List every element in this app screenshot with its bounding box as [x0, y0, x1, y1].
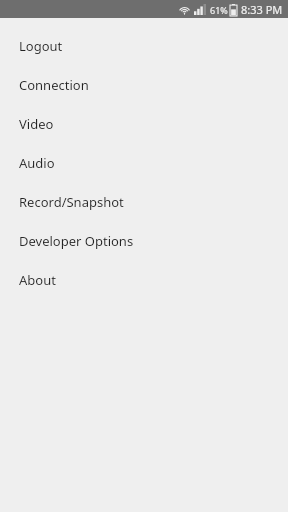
button[interactable]: Developer Options: [0, 221, 288, 260]
staticText: 61%: [210, 4, 228, 16]
button[interactable]: Video: [0, 104, 288, 143]
button[interactable]: Record/Snapshot: [0, 182, 288, 221]
button[interactable]: Logout: [0, 26, 288, 65]
staticText: Developer Options: [19, 232, 134, 250]
other: Battery 61 percent: [230, 4, 237, 16]
button[interactable]: Audio: [0, 143, 288, 182]
button[interactable]: About: [0, 260, 288, 299]
other: Mobile signal: [194, 4, 206, 15]
button[interactable]: Connection: [0, 65, 288, 104]
staticText: About: [19, 271, 56, 289]
staticText: Video: [19, 115, 54, 133]
staticText: Logout: [19, 37, 63, 55]
staticText: Audio: [19, 154, 55, 172]
staticText: Record/Snapshot: [19, 193, 124, 211]
staticText: 8:33 PM: [241, 2, 283, 17]
other: Wi-Fi: [179, 4, 190, 15]
staticText: Connection: [19, 76, 89, 94]
